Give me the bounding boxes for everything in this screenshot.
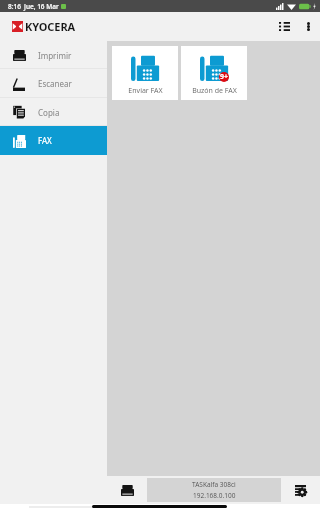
staticText: FAX <box>38 135 52 146</box>
button[interactable]: Escanear <box>0 69 107 98</box>
button[interactable]: More options <box>297 12 320 41</box>
button[interactable]: TASKalfa 308ci <box>147 478 281 502</box>
button[interactable]: Copia <box>0 98 107 126</box>
staticText: 8:16 <box>8 2 21 11</box>
button[interactable]: 9+ <box>181 46 247 100</box>
staticText: TASKalfa 308ci <box>192 480 236 489</box>
button[interactable]: List view <box>271 12 297 41</box>
staticText: 9+ <box>220 72 229 82</box>
staticText: 192.168.0.100 <box>193 491 236 500</box>
button[interactable]: Printer <box>107 476 147 504</box>
button[interactable]: Settings <box>281 476 320 504</box>
staticText: Copia <box>38 107 60 118</box>
staticText: Jue, 16 Mar <box>24 2 59 11</box>
staticText: Imprimir <box>38 50 72 61</box>
staticText: KYOCERA <box>25 19 76 34</box>
staticText: Buzón de FAX <box>192 86 237 96</box>
button[interactable]: FAX <box>0 126 107 155</box>
staticText: Enviar FAX <box>128 86 163 96</box>
button[interactable]: Imprimir <box>0 41 107 69</box>
staticText: Escanear <box>38 78 72 89</box>
button[interactable]: Enviar FAX <box>112 46 178 100</box>
